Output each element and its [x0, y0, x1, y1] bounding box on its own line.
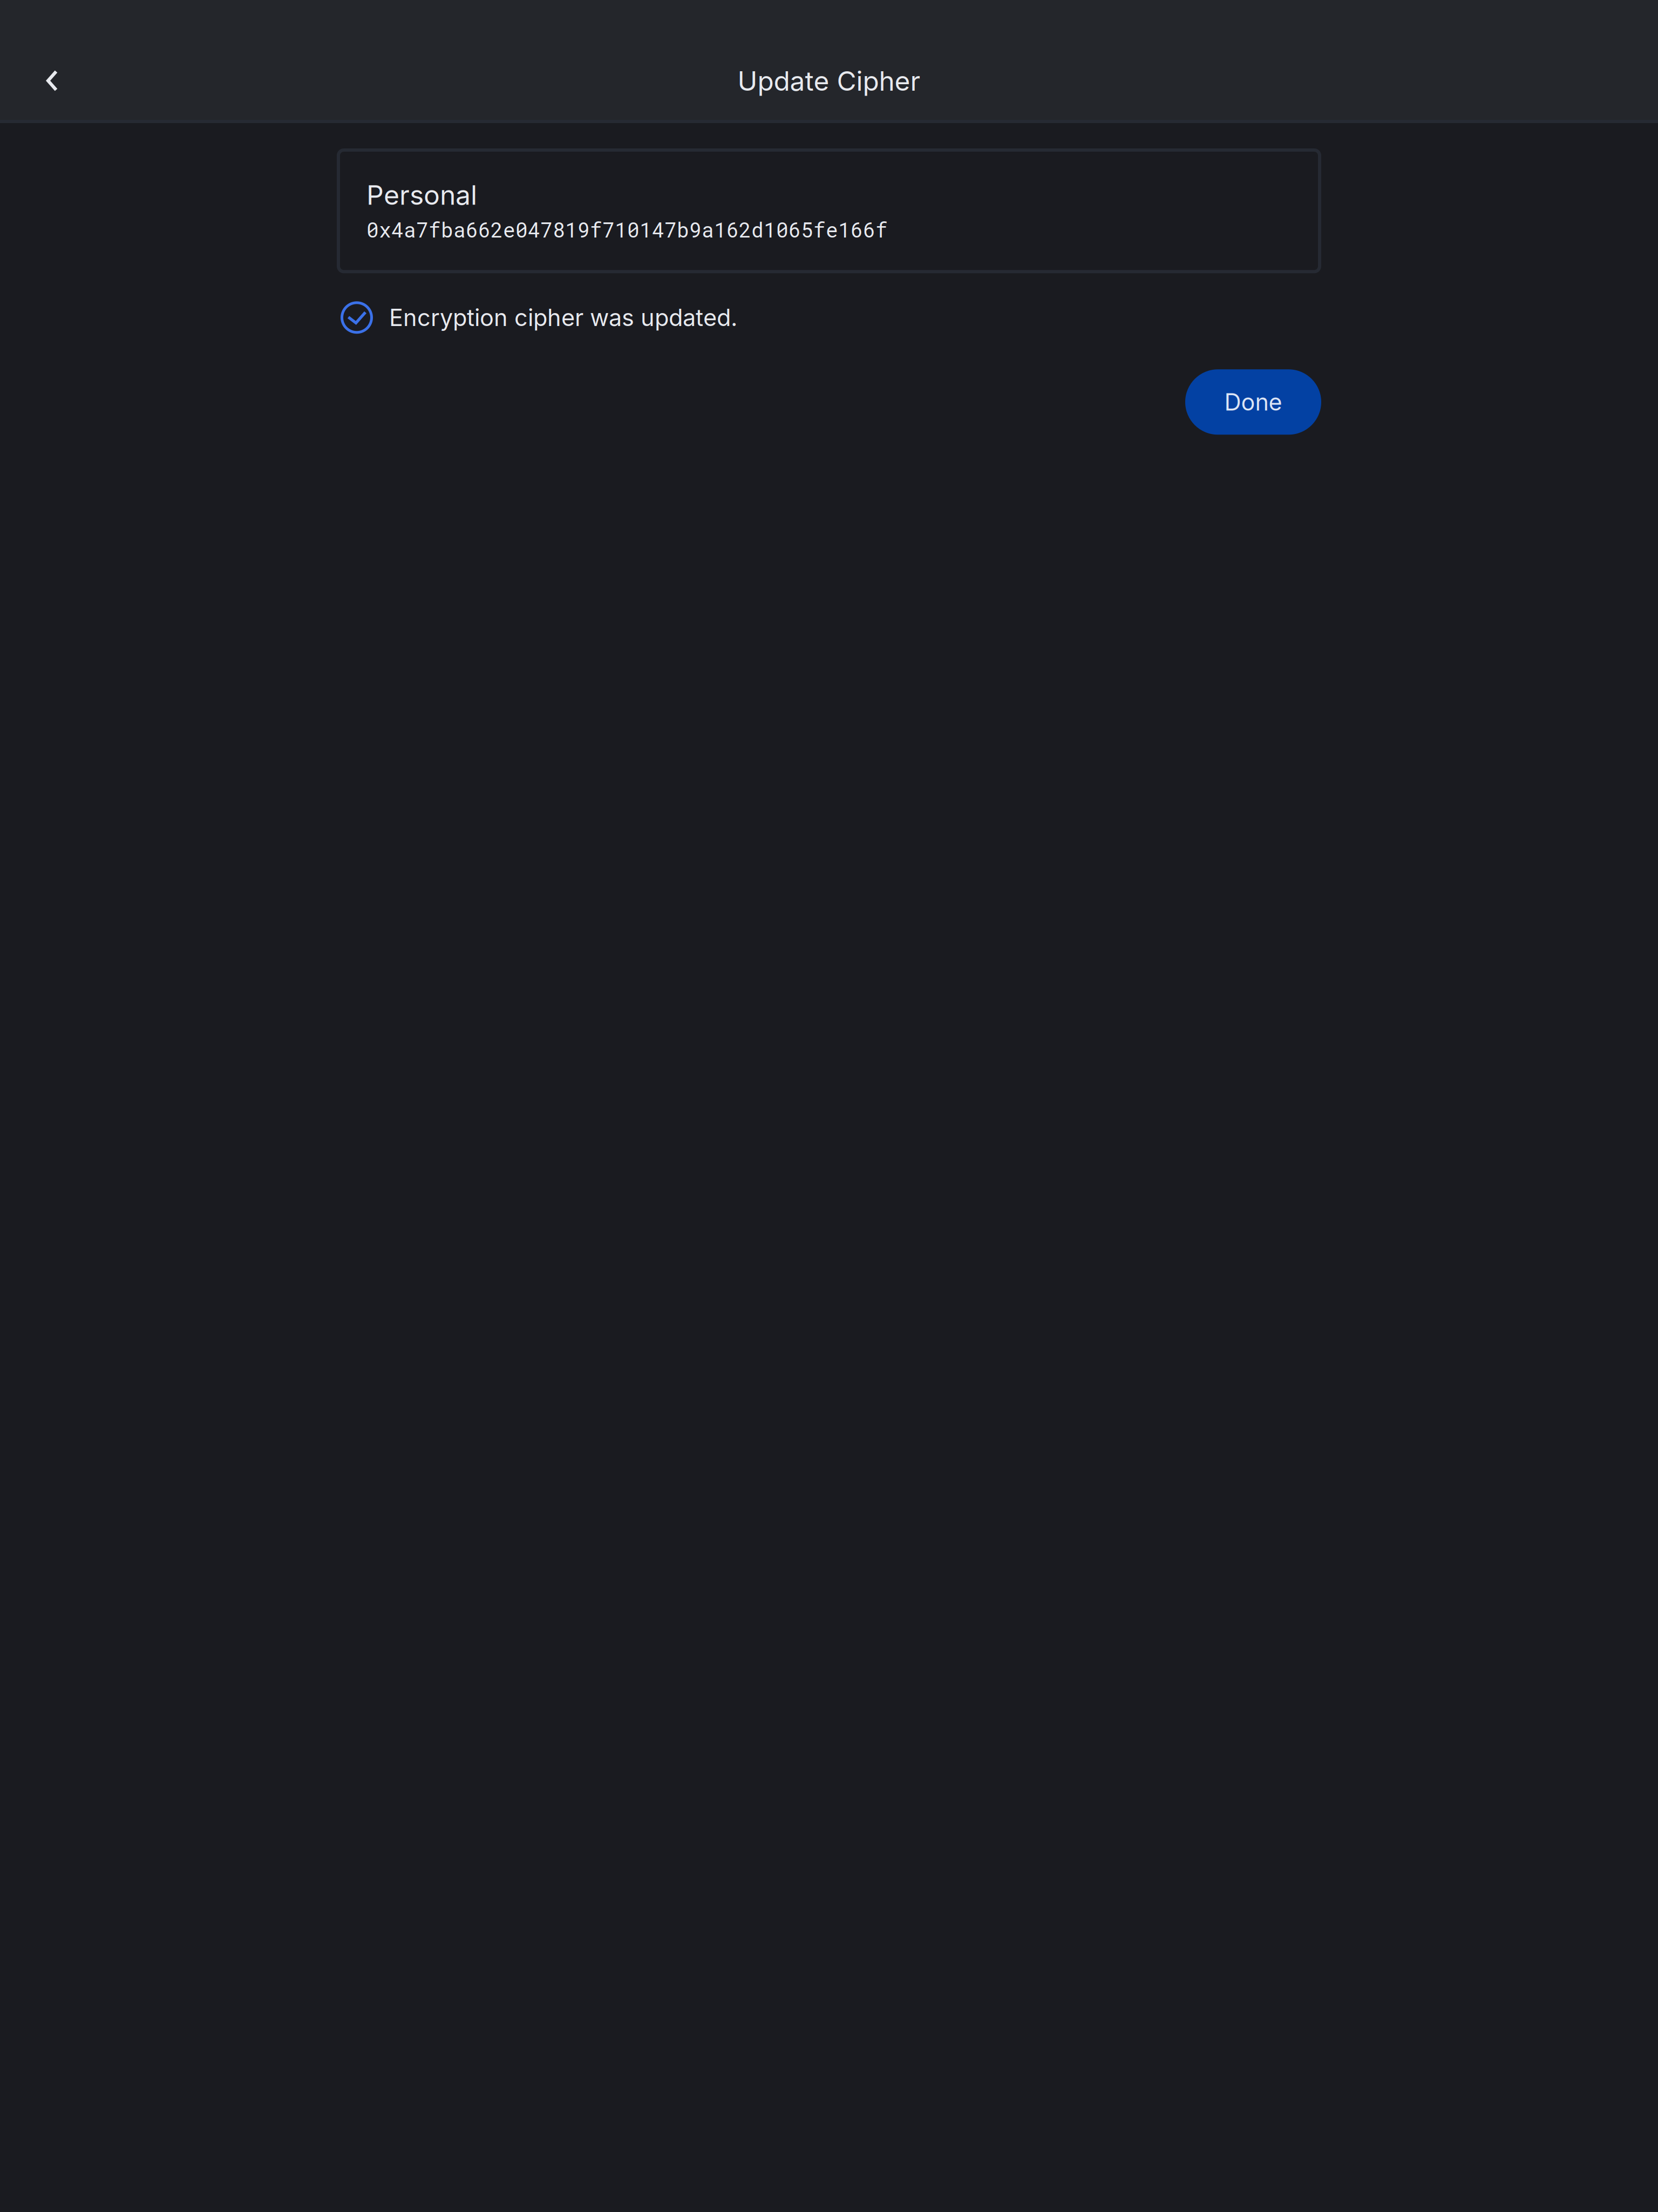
- staticText: 0x4a7fba662e047819f710147b9a162d1065fe16…: [366, 216, 888, 243]
- staticText: Update Cipher: [738, 65, 920, 97]
- button[interactable]: Done: [1185, 369, 1321, 435]
- staticText: Encryption cipher was updated.: [389, 303, 737, 332]
- staticText: Personal: [366, 179, 477, 211]
- staticText: Done: [1224, 388, 1282, 416]
- button[interactable]: Back: [0, 42, 103, 120]
